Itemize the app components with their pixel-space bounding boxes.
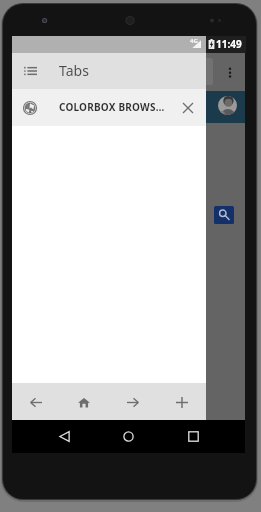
button[interactable]: Back — [52, 420, 76, 453]
staticText: 11:49 — [216, 37, 242, 51]
button[interactable]: COLORBOX BROWS… — [12, 89, 206, 126]
button[interactable]: Menu — [18, 59, 42, 83]
staticText: 4G — [190, 37, 198, 45]
button[interactable]: Close tab — [177, 97, 199, 119]
button[interactable]: Forward — [108, 383, 157, 420]
button[interactable]: Search — [214, 206, 234, 224]
button[interactable]: New tab — [157, 383, 206, 420]
button[interactable]: More options — [221, 63, 239, 81]
staticText: Tabs — [59, 61, 89, 80]
button[interactable]: Home — [116, 420, 140, 453]
button[interactable]: Recent apps — [181, 420, 205, 453]
staticText: COLORBOX BROWS… — [59, 100, 165, 114]
button[interactable]: Back — [12, 383, 60, 420]
button[interactable]: Home — [60, 383, 108, 420]
